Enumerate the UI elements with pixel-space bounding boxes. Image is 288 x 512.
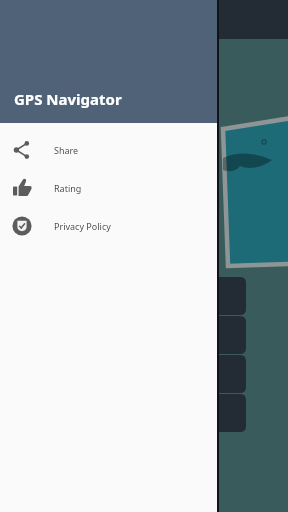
staticText: GPS Navigator — [14, 89, 122, 109]
button[interactable]: Privacy Policy — [0, 207, 217, 245]
staticText: Rating — [54, 182, 82, 194]
staticText: Share — [54, 144, 79, 156]
button[interactable]: Share — [0, 131, 217, 169]
button[interactable]: Rating — [0, 169, 217, 207]
staticText: Privacy Policy — [54, 220, 111, 232]
